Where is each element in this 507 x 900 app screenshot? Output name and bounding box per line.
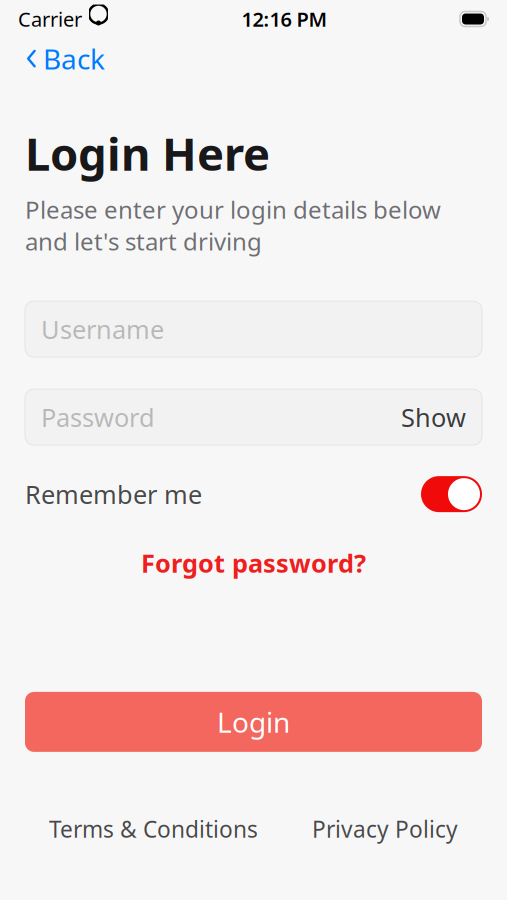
button[interactable]: Back xyxy=(16,36,115,81)
button[interactable]: Forgot password? xyxy=(127,540,380,586)
staticText: Carrier xyxy=(18,6,82,32)
staticText: Remember me xyxy=(25,477,202,511)
staticText: Privacy Policy xyxy=(312,814,458,844)
button[interactable]: Login xyxy=(25,692,482,752)
staticText: Login xyxy=(217,703,290,740)
button[interactable]: Remember me toggle xyxy=(421,476,482,512)
staticText: 12:16 PM xyxy=(241,6,327,32)
button[interactable]: Privacy Policy xyxy=(308,806,462,852)
staticText: Login Here xyxy=(25,123,270,183)
button[interactable]: Show xyxy=(389,392,466,442)
button[interactable]: Terms & Conditions xyxy=(45,806,262,852)
staticText: Show xyxy=(401,400,466,434)
staticText: Forgot password? xyxy=(141,546,366,580)
staticText: Password xyxy=(41,400,155,434)
staticText: Username xyxy=(41,312,164,346)
staticText: Please enter your login details below an… xyxy=(25,193,441,257)
staticText: Back xyxy=(43,40,105,77)
staticText: Terms & Conditions xyxy=(49,814,258,844)
